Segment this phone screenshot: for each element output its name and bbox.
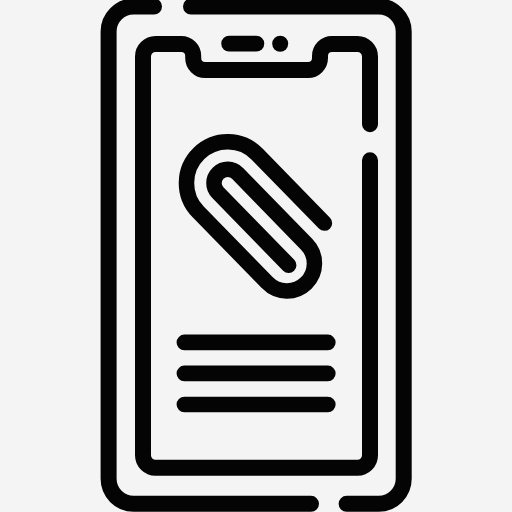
button[interactable]: Smartphone with paperclip attachment [0,0,512,512]
